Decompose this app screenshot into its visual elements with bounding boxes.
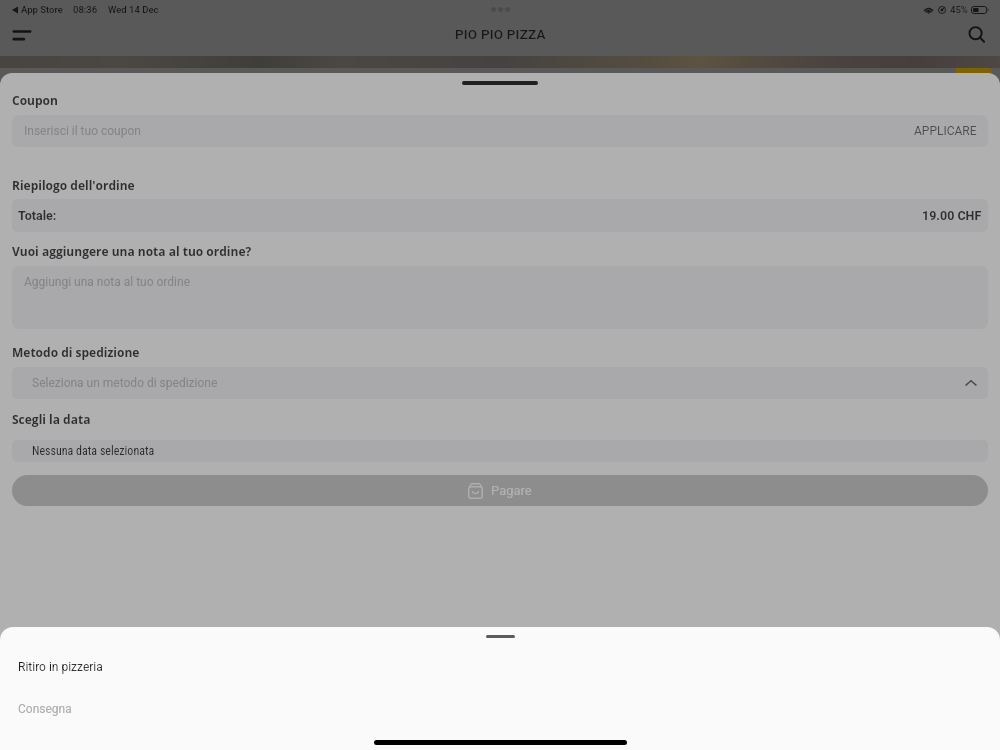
button[interactable]: Pagare xyxy=(12,475,988,506)
button[interactable]: Search xyxy=(961,19,993,51)
staticText: Riepilogo dell'ordine xyxy=(12,177,135,193)
staticText: PIO PIO PIZZA xyxy=(455,26,546,42)
button[interactable]: Inserisci il tuo coupon xyxy=(12,115,988,147)
button[interactable]: Nessuna data selezionata xyxy=(12,440,988,462)
staticText: Nessuna data selezionata xyxy=(32,444,155,458)
staticText: Pagare xyxy=(491,483,532,498)
staticText: 45% xyxy=(950,4,968,15)
staticText: APPLICARE xyxy=(914,124,977,138)
button[interactable]: Ritiro in pizzeria xyxy=(0,649,1000,685)
staticText: Totale: xyxy=(18,208,57,223)
staticText: Coupon xyxy=(12,92,58,108)
staticText: Seleziona un metodo di spedizione xyxy=(32,376,218,390)
staticText: Ritiro in pizzeria xyxy=(18,660,103,674)
staticText: 19.00 CHF xyxy=(922,208,982,223)
staticText: Metodo di spedizione xyxy=(12,344,140,360)
staticText: Consegna xyxy=(18,702,72,716)
staticText: Wed 14 Dec xyxy=(108,4,159,15)
staticText: App Store xyxy=(21,4,63,15)
staticText: Vuoi aggiungere una nota al tuo ordine? xyxy=(12,243,252,259)
staticText: Aggiungi una nota al tuo ordine xyxy=(24,275,191,289)
staticText: 08:36 xyxy=(73,4,98,15)
button[interactable]: Consegna xyxy=(0,691,1000,727)
staticText: Inserisci il tuo coupon xyxy=(24,124,141,138)
staticText: Scegli la data xyxy=(12,411,91,427)
button[interactable]: Open navigation menu xyxy=(5,18,39,52)
button[interactable]: Seleziona un metodo di spedizione xyxy=(12,367,988,399)
